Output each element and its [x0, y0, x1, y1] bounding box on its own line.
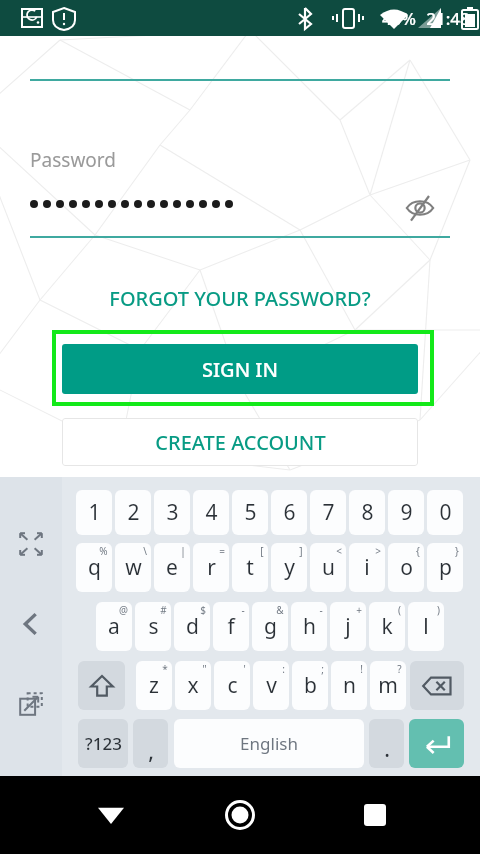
staticText: = — [219, 544, 225, 558]
button[interactable]: 8 — [349, 490, 385, 535]
button[interactable]: Floating keyboard — [0, 673, 62, 735]
button[interactable]: n — [331, 661, 367, 710]
button[interactable]: y — [271, 543, 307, 592]
button[interactable]: m — [370, 661, 406, 710]
staticText: } — [455, 544, 459, 558]
staticText: g — [264, 612, 277, 641]
button[interactable]: Enter — [409, 719, 464, 768]
button[interactable]: 9 — [388, 490, 424, 535]
button[interactable]: r — [193, 543, 229, 592]
button[interactable]: Back — [0, 593, 62, 655]
staticText: | — [180, 544, 186, 558]
button[interactable]: o — [388, 543, 424, 592]
button[interactable]: English — [174, 719, 364, 768]
staticText: ? — [397, 662, 402, 676]
staticText: 40% — [382, 7, 416, 30]
button[interactable]: g — [252, 602, 288, 651]
staticText: ; — [321, 662, 324, 676]
staticText: p — [439, 553, 452, 582]
button[interactable]: s — [135, 602, 171, 651]
staticText: ?123 — [85, 732, 122, 755]
button[interactable]: 1 — [76, 490, 112, 535]
staticText: d — [186, 612, 199, 641]
button[interactable]: 3 — [154, 490, 190, 535]
staticText: s — [148, 612, 159, 641]
staticText: 21:48 — [426, 7, 470, 30]
staticText: 1 — [88, 498, 101, 527]
button[interactable]: Recents — [336, 776, 414, 854]
staticText: a — [108, 612, 120, 641]
button[interactable]: q — [76, 543, 112, 592]
button[interactable]: Shift — [78, 661, 125, 710]
button[interactable]: i — [349, 543, 385, 592]
button[interactable]: Expand keyboard — [0, 513, 62, 575]
staticText: FORGOT YOUR PASSWORD? — [109, 285, 371, 312]
button[interactable]: d — [174, 602, 210, 651]
button[interactable]: v — [253, 661, 289, 710]
staticText: $ — [200, 603, 206, 617]
button[interactable]: w — [115, 543, 151, 592]
button[interactable]: h — [291, 602, 327, 651]
staticText: SIGN IN — [202, 356, 278, 383]
button[interactable]: b — [292, 661, 328, 710]
button[interactable]: k — [369, 602, 405, 651]
button[interactable]: Backspace — [410, 661, 464, 710]
button[interactable]: 2 — [115, 490, 151, 535]
button[interactable]: t — [232, 543, 268, 592]
staticText: , — [148, 737, 154, 766]
staticText: - — [241, 603, 245, 617]
button[interactable]: Show password — [396, 184, 444, 232]
button[interactable]: u — [310, 543, 346, 592]
staticText: < — [336, 544, 342, 558]
staticText: ] — [299, 544, 303, 558]
button[interactable]: . — [369, 719, 404, 768]
button[interactable]: , — [133, 719, 168, 768]
staticText: : — [282, 662, 285, 676]
button[interactable]: FORGOT YOUR PASSWORD? — [0, 281, 480, 315]
staticText: k — [381, 612, 393, 641]
staticText: English — [240, 732, 298, 755]
button[interactable]: 4 — [193, 490, 229, 535]
button[interactable]: x — [175, 661, 211, 710]
button[interactable]: a — [96, 602, 132, 651]
staticText: > — [375, 544, 381, 558]
staticText: h — [303, 612, 316, 641]
staticText: 7 — [322, 498, 335, 527]
button[interactable]: 0 — [427, 490, 463, 535]
button[interactable]: j — [330, 602, 366, 651]
staticText: ) — [437, 603, 440, 617]
button[interactable]: Home — [201, 776, 279, 854]
button[interactable]: e — [154, 543, 190, 592]
staticText: r — [207, 553, 216, 582]
staticText: x — [187, 671, 199, 700]
button[interactable]: 5 — [232, 490, 268, 535]
button[interactable]: f — [213, 602, 249, 651]
button[interactable]: c — [214, 661, 250, 710]
staticText: Password — [30, 147, 116, 173]
button[interactable]: CREATE ACCOUNT — [62, 418, 418, 466]
button[interactable]: SIGN IN — [62, 344, 418, 394]
staticText: 2 — [127, 498, 140, 527]
staticText: ' — [243, 662, 246, 676]
button[interactable]: p — [427, 543, 463, 592]
button[interactable]: ?123 — [78, 719, 128, 768]
staticText: c — [227, 671, 238, 700]
button[interactable]: Hide keyboard — [72, 776, 150, 854]
button[interactable]: 7 — [310, 490, 346, 535]
button[interactable]: 6 — [271, 490, 307, 535]
staticText: l — [423, 612, 429, 641]
button[interactable]: l — [408, 602, 444, 651]
staticText: 8 — [361, 498, 374, 527]
staticText: - — [319, 603, 323, 617]
staticText: & — [276, 603, 284, 617]
staticText: ! — [360, 662, 363, 676]
staticText: t — [246, 553, 254, 582]
staticText: z — [149, 671, 159, 700]
staticText: " — [202, 662, 207, 676]
staticText: w — [125, 553, 142, 582]
staticText: 4 — [205, 498, 218, 527]
staticText: + — [356, 603, 362, 617]
staticText: o — [400, 553, 413, 582]
staticText: 6 — [283, 498, 296, 527]
button[interactable]: z — [136, 661, 172, 710]
